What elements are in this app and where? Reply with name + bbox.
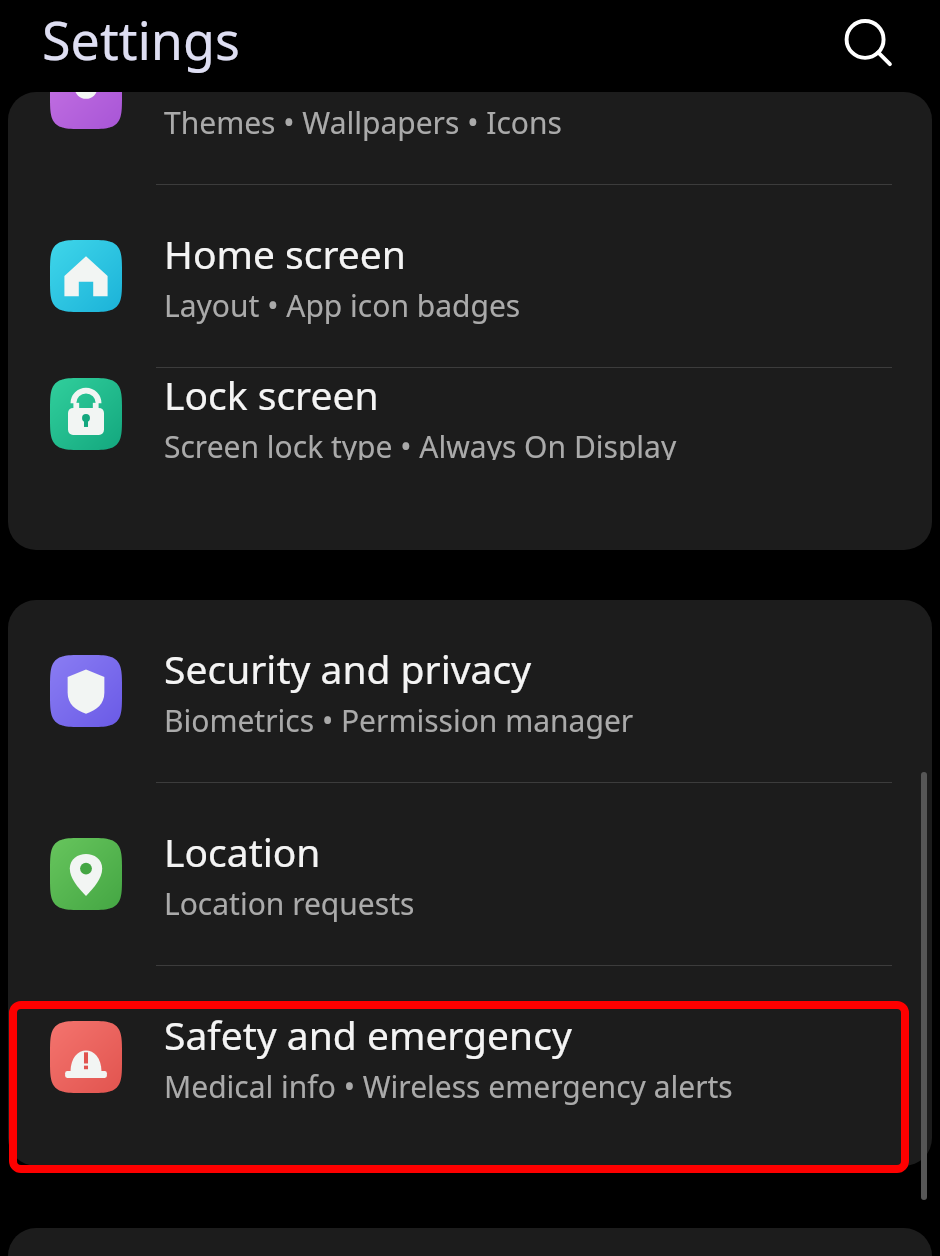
staticText: Layout • App icon badges bbox=[164, 285, 521, 326]
staticText: Themes • Wallpapers • Icons bbox=[164, 102, 562, 143]
staticText: Home screen bbox=[164, 227, 406, 280]
staticText: Lock screen bbox=[164, 368, 379, 421]
button[interactable]: Search bbox=[824, 0, 914, 90]
staticText: Screen lock type • Always On Display bbox=[164, 426, 677, 460]
staticText: Safety and emergency bbox=[164, 1008, 572, 1061]
button[interactable]: Home screen bbox=[8, 185, 932, 367]
button[interactable]: Safety and emergency bbox=[8, 966, 932, 1148]
staticText: Settings bbox=[42, 4, 240, 75]
button[interactable]: Themes bbox=[8, 92, 932, 184]
staticText: Location requests bbox=[164, 883, 415, 924]
button[interactable]: Security and privacy bbox=[8, 600, 932, 782]
staticText: Medical info • Wireless emergency alerts bbox=[164, 1066, 733, 1107]
staticText: Security and privacy bbox=[164, 642, 532, 695]
button[interactable]: Location bbox=[8, 783, 932, 965]
staticText: Biometrics • Permission manager bbox=[164, 700, 634, 741]
button[interactable]: Lock screen bbox=[8, 368, 932, 460]
staticText: Location bbox=[164, 825, 321, 878]
